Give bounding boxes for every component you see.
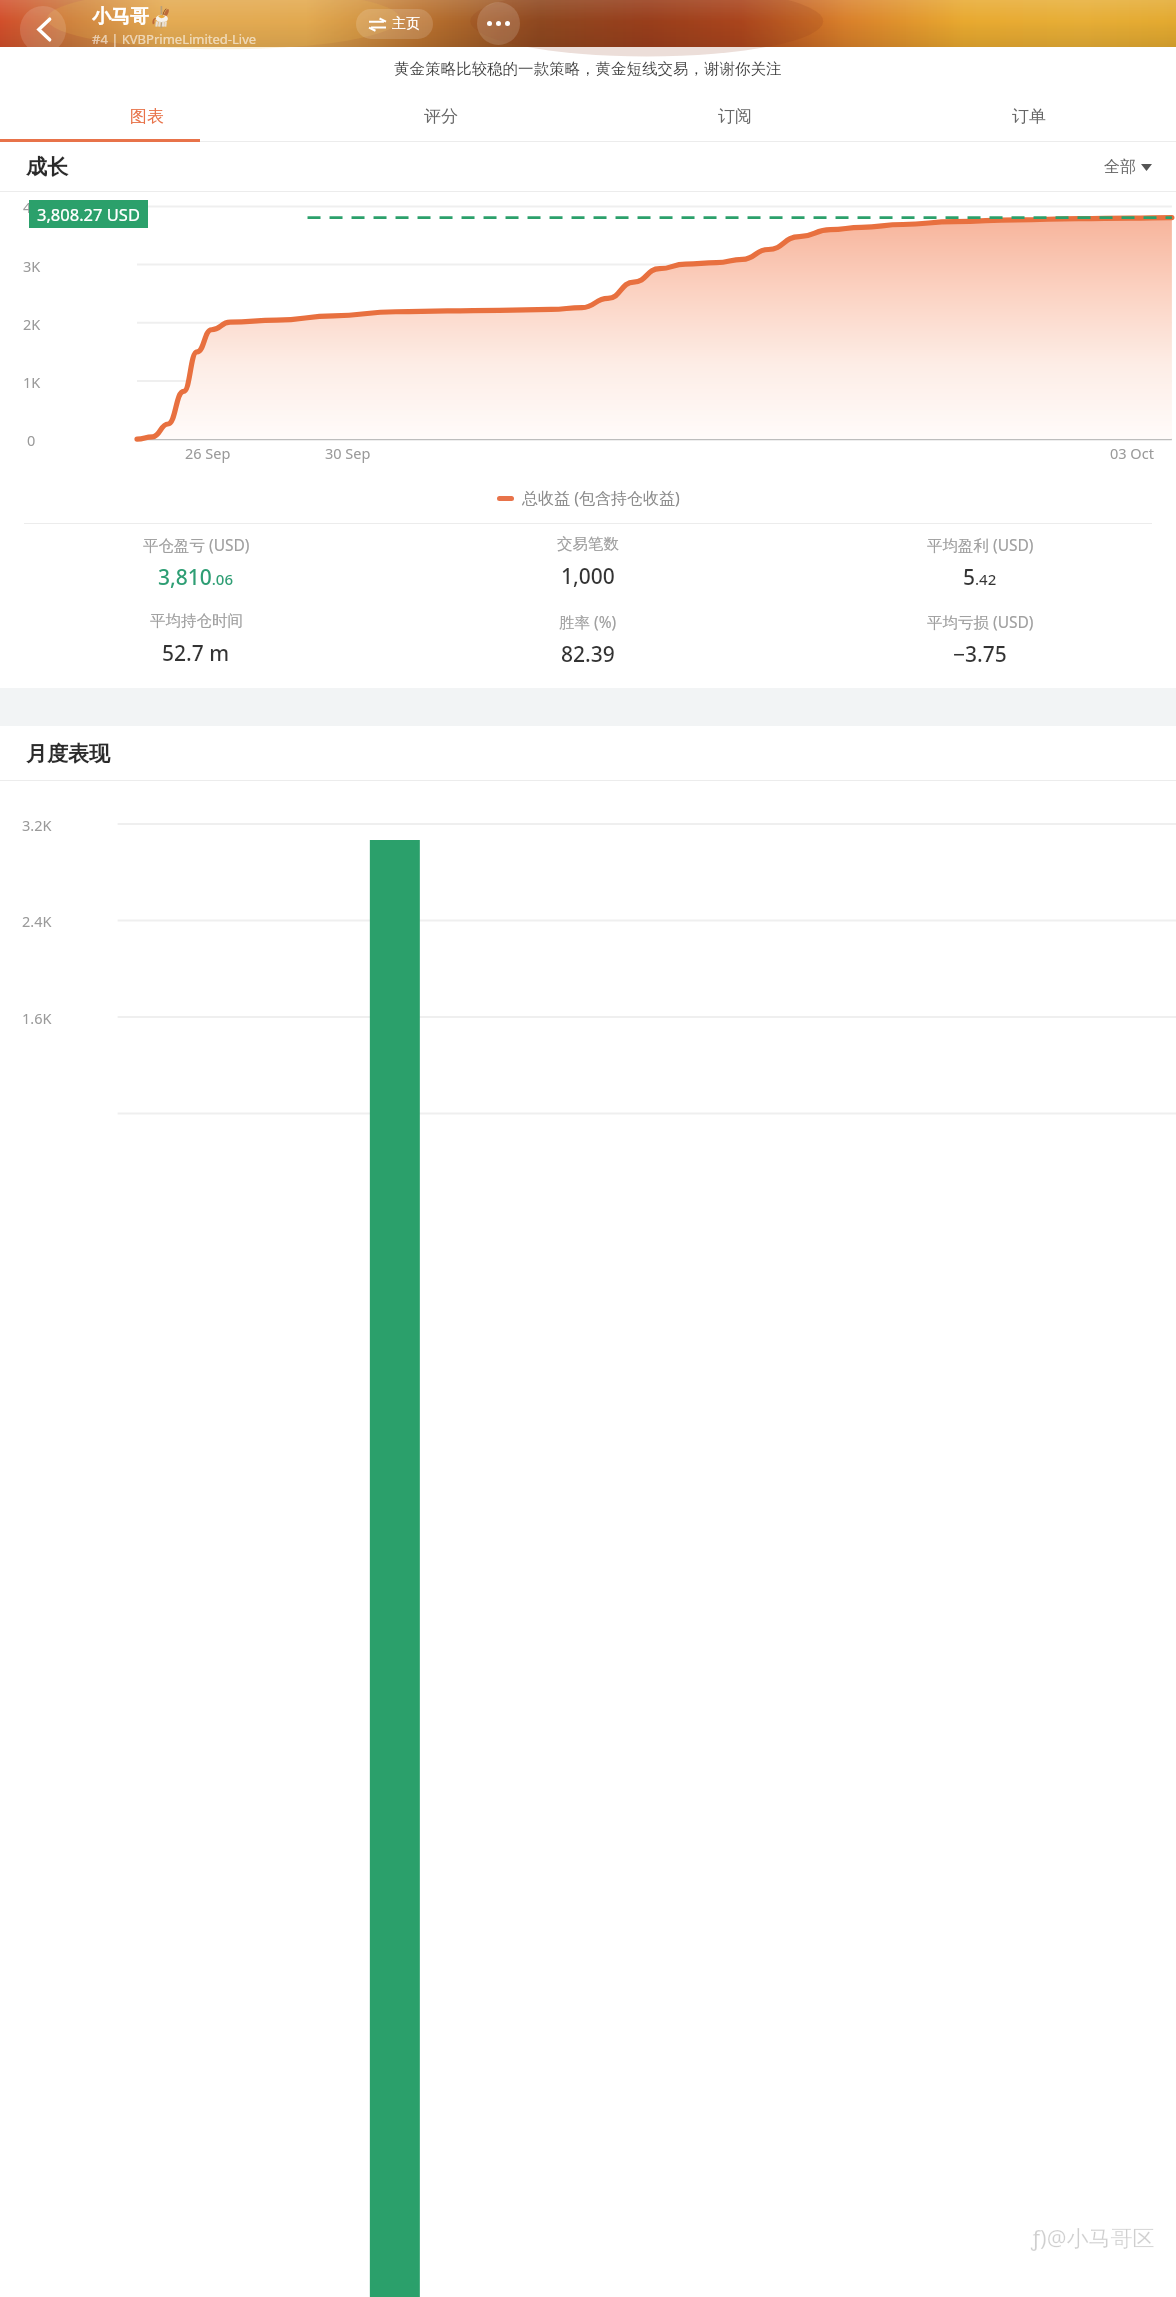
staticText: 月度表现 <box>26 741 110 767</box>
button[interactable]: 全部 <box>1104 157 1152 177</box>
staticText: ƒ)@小马哥区 <box>1031 2222 1155 2252</box>
staticText: 26 Sep <box>185 443 231 463</box>
staticText: 全部 <box>1104 157 1136 177</box>
staticText: 1.6K <box>22 1008 52 1028</box>
staticText: 平仓盈亏 (USD) <box>143 534 250 555</box>
staticText: 82.39 <box>561 640 615 669</box>
staticText: 平均盈利 (USD) <box>927 534 1034 555</box>
staticText: 3K <box>23 256 41 276</box>
staticText: 订阅 <box>718 106 752 127</box>
staticText: 5.42 <box>963 563 997 592</box>
staticText: 平均持仓时间 <box>150 611 243 631</box>
button[interactable]: 订单 <box>882 90 1176 142</box>
staticText: 03 Oct <box>1110 443 1154 463</box>
staticText: −3.75 <box>953 640 1007 669</box>
staticText: 黄金策略比较稳的一款策略，黄金短线交易，谢谢你关注 <box>394 59 782 79</box>
staticText: #4 | KVBPrimeLimited-Live <box>92 30 257 48</box>
button[interactable]: Back <box>20 6 66 53</box>
staticText: 2.4K <box>22 911 52 931</box>
staticText: 成长 <box>26 154 68 180</box>
button[interactable]: 订阅 <box>588 90 882 142</box>
button[interactable]: 图表 <box>0 90 294 142</box>
staticText: 订单 <box>1012 106 1046 127</box>
staticText: ƒ)@小马哥区 <box>1030 2221 1154 2251</box>
staticText: 评分 <box>424 106 458 127</box>
staticText: 52.7 m <box>162 639 230 668</box>
staticText: 4K <box>23 197 41 217</box>
staticText: 1K <box>23 372 41 392</box>
staticText: 3,808.27 USD <box>37 203 140 225</box>
staticText: 胜率 (%) <box>559 611 617 632</box>
staticText: 平均亏损 (USD) <box>927 611 1034 632</box>
staticText: 主页 <box>392 15 420 33</box>
staticText: 1,000 <box>561 562 615 591</box>
staticText: 0 <box>27 430 36 450</box>
staticText: 总收益 (包含持仓收益) <box>522 487 680 509</box>
button[interactable]: 主页 <box>356 9 433 39</box>
staticText: 交易笔数 <box>557 534 619 554</box>
button[interactable]: More options <box>477 2 520 45</box>
staticText: 图表 <box>130 106 164 127</box>
staticText: 小马哥 <box>92 5 149 29</box>
button[interactable]: 评分 <box>294 90 588 142</box>
staticText: 3,810.06 <box>158 563 234 592</box>
staticText: 3.2K <box>22 815 52 835</box>
staticText: 30 Sep <box>325 443 371 463</box>
staticText: 2K <box>23 314 41 334</box>
